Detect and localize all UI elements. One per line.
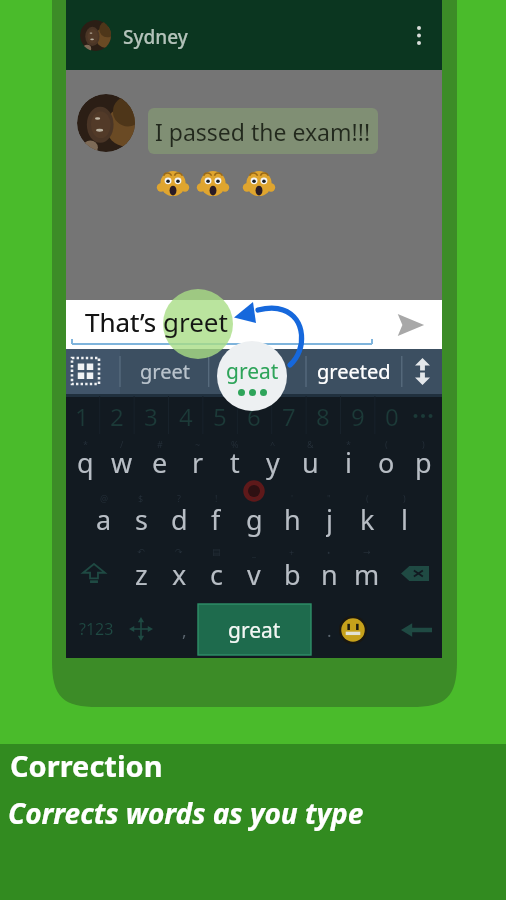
staticText: ) xyxy=(422,438,425,450)
staticText: * xyxy=(346,438,351,450)
staticText: p xyxy=(415,444,432,480)
button[interactable]: # xyxy=(140,426,180,462)
button[interactable]: $ xyxy=(121,480,161,516)
button[interactable]: v xyxy=(234,556,274,592)
button[interactable]: & xyxy=(290,426,330,462)
button[interactable]: o xyxy=(366,444,406,480)
staticText: That’s greet xyxy=(85,304,228,339)
staticText: b xyxy=(284,556,301,592)
button[interactable]: • xyxy=(309,534,349,570)
button[interactable]: 1 xyxy=(62,398,102,434)
button[interactable]: w xyxy=(102,444,142,480)
button[interactable]: . xyxy=(309,612,349,648)
button[interactable]: greet xyxy=(120,349,209,394)
staticText: ↶ xyxy=(137,547,145,557)
staticText: * xyxy=(83,438,88,450)
button[interactable]: greeted xyxy=(306,349,402,394)
button[interactable]: h xyxy=(272,501,312,537)
button[interactable]: ( xyxy=(347,480,387,516)
button[interactable]: u xyxy=(290,444,330,480)
button[interactable]: _ xyxy=(234,534,274,570)
staticText: i xyxy=(345,444,352,480)
button[interactable]: e xyxy=(140,444,180,480)
button[interactable]: great xyxy=(209,349,306,394)
button[interactable]: , xyxy=(164,612,204,648)
button[interactable]: More options xyxy=(402,18,436,52)
button[interactable]: a xyxy=(84,501,124,537)
button[interactable]: 3 xyxy=(131,398,171,434)
button[interactable]: 0 xyxy=(372,398,412,434)
button[interactable]: 8 xyxy=(303,398,343,434)
button[interactable]: 9 xyxy=(338,398,378,434)
button[interactable]: * xyxy=(328,426,368,462)
button[interactable]: % xyxy=(215,426,255,462)
button[interactable]: Shift xyxy=(72,552,116,594)
button[interactable]: s xyxy=(121,501,161,537)
button[interactable]: i xyxy=(328,444,368,480)
button[interactable]: k xyxy=(347,501,387,537)
button[interactable]: 4 xyxy=(166,398,206,434)
button[interactable]: 6 xyxy=(234,398,274,434)
staticText: v xyxy=(247,556,261,592)
button[interactable]: q xyxy=(65,444,105,480)
button[interactable]: p xyxy=(403,444,443,480)
button[interactable]: ' xyxy=(272,480,312,516)
button[interactable]: More symbols xyxy=(413,408,434,424)
button[interactable]: / xyxy=(102,426,142,462)
button[interactable]: ) xyxy=(403,426,443,462)
staticText: great xyxy=(228,616,281,645)
button[interactable]: Backspace xyxy=(394,553,436,593)
button[interactable]: t xyxy=(215,444,255,480)
button[interactable]: f xyxy=(196,501,236,537)
button[interactable]: j xyxy=(309,501,349,537)
button[interactable]: Expand suggestions xyxy=(402,349,442,394)
button[interactable]: ^ xyxy=(253,426,293,462)
button[interactable]: g xyxy=(234,501,274,537)
button[interactable]: 5 xyxy=(200,398,240,434)
button[interactable]: ~ xyxy=(178,426,218,462)
button[interactable]: 7 xyxy=(269,398,309,434)
button[interactable]: c xyxy=(196,556,236,592)
button[interactable]: x xyxy=(159,556,199,592)
button[interactable]: ? xyxy=(159,480,199,516)
button[interactable]: great xyxy=(217,341,287,411)
button[interactable]: r xyxy=(178,444,218,480)
button[interactable]: l xyxy=(384,501,424,537)
button[interactable]: d xyxy=(159,501,199,537)
button[interactable]: 2 xyxy=(97,398,137,434)
button[interactable]: z xyxy=(121,556,161,592)
button[interactable]: Emoji xyxy=(339,616,367,644)
staticText: 3 xyxy=(144,400,158,433)
button[interactable]: ( xyxy=(366,426,406,462)
staticText: That’s greet xyxy=(85,304,228,339)
button[interactable]: Send xyxy=(390,307,430,343)
button[interactable]: y xyxy=(253,444,293,480)
button[interactable]: ?123 xyxy=(74,607,118,651)
button[interactable]: Change language xyxy=(128,616,154,642)
button[interactable]: Enter xyxy=(396,614,436,646)
button[interactable]: " xyxy=(309,480,349,516)
button[interactable]: * xyxy=(65,426,105,462)
button[interactable]: - xyxy=(234,480,274,516)
button[interactable]: m xyxy=(347,556,387,592)
button[interactable]: b xyxy=(272,556,312,592)
staticText: ) xyxy=(403,492,406,504)
button[interactable]: @ xyxy=(84,480,124,516)
button[interactable]: ! xyxy=(196,480,236,516)
button[interactable]: + xyxy=(272,534,312,570)
staticText: great xyxy=(226,357,279,386)
button[interactable]: great xyxy=(198,604,311,655)
button[interactable]: ) xyxy=(384,480,424,516)
staticText: ?123 xyxy=(79,618,114,640)
staticText: greet xyxy=(140,358,190,385)
button[interactable]: Apps xyxy=(66,349,120,394)
staticText: f xyxy=(211,501,221,537)
button[interactable]: n xyxy=(309,556,349,592)
staticText: ! xyxy=(215,492,218,504)
staticText: c xyxy=(210,556,223,592)
staticText: t xyxy=(230,444,240,480)
